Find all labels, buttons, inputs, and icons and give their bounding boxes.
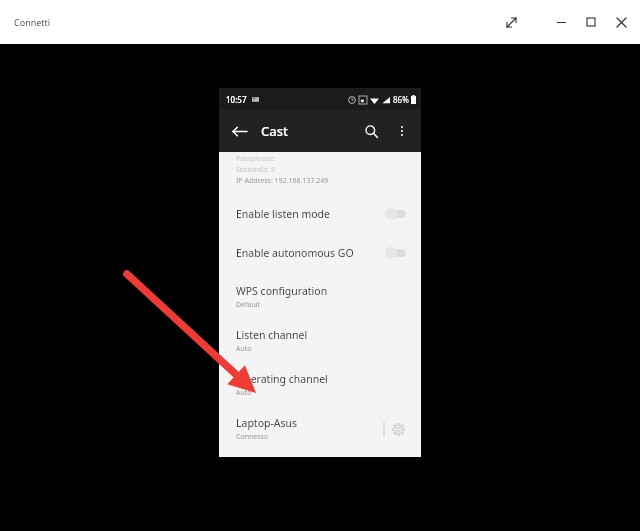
staticText: 86%	[393, 94, 409, 105]
staticText: Cast	[261, 122, 288, 140]
staticText: Laptop-Asus	[236, 416, 298, 430]
button[interactable]: Operating channel	[236, 372, 411, 398]
staticText: 10:57	[226, 94, 247, 105]
staticText: Operating channel	[236, 372, 328, 386]
button[interactable]: Search	[355, 115, 387, 147]
staticText: Auto	[236, 388, 252, 398]
button[interactable]: Back	[223, 115, 255, 147]
button[interactable]: Expand	[498, 9, 524, 35]
staticText: Connetti	[14, 16, 51, 28]
button[interactable]: Enable autonomous GO	[236, 242, 411, 264]
button[interactable]: Close	[608, 9, 634, 35]
button[interactable]: Listen channel	[236, 328, 411, 354]
button[interactable]: Minimize	[548, 9, 574, 35]
button[interactable]: Maximize	[578, 9, 604, 35]
staticText: Enable listen mode	[236, 207, 330, 221]
staticText: Enable autonomous GO	[236, 246, 354, 260]
staticText: Connesso	[236, 432, 269, 442]
button[interactable]: Laptop-Asus	[236, 416, 411, 442]
button[interactable]: WPS configuration	[236, 284, 411, 310]
button[interactable]: More options	[387, 116, 417, 146]
staticText: Auto	[236, 344, 252, 354]
staticText: SessionId: 0	[236, 165, 276, 175]
button[interactable]: Enable listen mode	[236, 203, 411, 225]
staticText: Listen channel	[236, 328, 308, 342]
staticText: Passphrase:	[236, 154, 276, 164]
button[interactable]: Settings for Laptop-Asus	[385, 416, 411, 442]
staticText: IP Address: 192.168.137.249	[236, 176, 329, 186]
staticText: Default	[236, 300, 261, 310]
staticText: WPS configuration	[236, 284, 328, 298]
